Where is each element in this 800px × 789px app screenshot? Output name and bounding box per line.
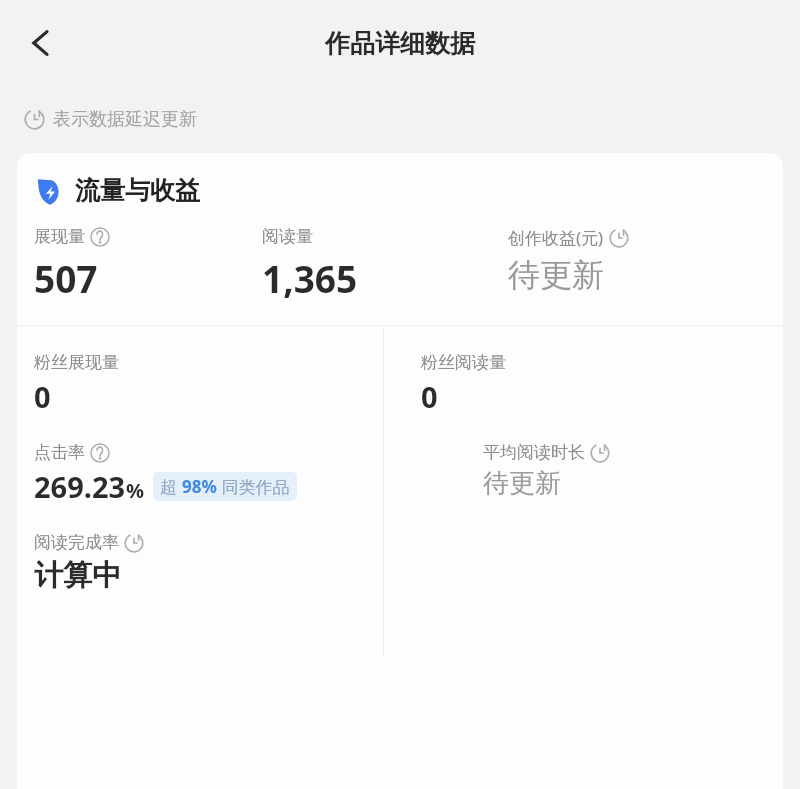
button[interactable]: 粉丝阅读量 [421, 352, 783, 416]
button[interactable]: 平均阅读时长 [483, 442, 783, 500]
staticText: 点击率 [34, 442, 85, 463]
button[interactable]: 创作收益(元) [508, 226, 783, 295]
staticText: 阅读完成率 [34, 532, 119, 553]
button[interactable]: 点击率 [34, 442, 462, 506]
staticText: 表示数据延迟更新 [53, 108, 197, 131]
staticText: % [126, 477, 145, 504]
staticText: 98% [182, 475, 217, 498]
staticText: 0 [34, 377, 51, 416]
staticText: 粉丝展现量 [34, 352, 119, 373]
staticText: 创作收益(元) [508, 226, 604, 249]
staticText: 待更新 [483, 467, 561, 500]
staticText: 作品详细数据 [325, 28, 475, 59]
button[interactable]: Back [18, 20, 64, 66]
staticText: 阅读量 [262, 226, 313, 247]
staticText: 计算中 [34, 557, 121, 594]
staticText: 1,365 [262, 253, 358, 303]
staticText: 展现量 [34, 226, 85, 247]
staticText: 0 [421, 377, 438, 416]
staticText: 269.23 [34, 467, 126, 506]
staticText: 粉丝阅读量 [421, 352, 506, 373]
staticText: 流量与收益 [75, 175, 200, 206]
staticText: 待更新 [508, 255, 604, 295]
button[interactable]: 流量与收益 [34, 175, 200, 206]
button[interactable]: 阅读量 [262, 226, 508, 303]
staticText: 超 [160, 475, 182, 498]
staticText: 同类作品 [217, 475, 290, 498]
button[interactable]: 展现量 [34, 226, 262, 303]
button[interactable]: 阅读完成率 [34, 532, 462, 594]
button[interactable]: 超 [160, 475, 290, 498]
button[interactable]: 表示数据延迟更新 [24, 108, 197, 131]
staticText: 507 [34, 253, 98, 303]
staticText: 平均阅读时长 [483, 442, 585, 463]
button[interactable]: 粉丝展现量 [34, 352, 400, 416]
